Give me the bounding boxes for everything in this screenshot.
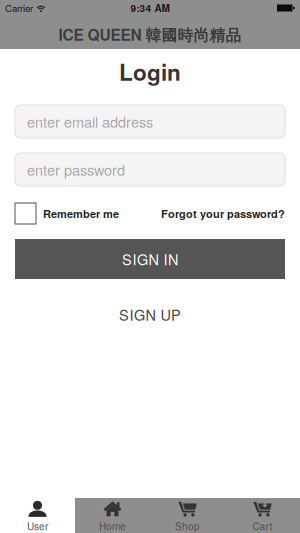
button[interactable]: SIGN UP [119, 304, 181, 325]
button[interactable]: SIGN IN [15, 239, 285, 279]
staticText: Remember me [43, 206, 119, 221]
staticText: enter email address [27, 111, 153, 132]
button[interactable]: Remember me [15, 203, 119, 224]
button[interactable]: enter email address [15, 105, 285, 138]
staticText: ICE QUEEN 韓國時尚精品 [58, 23, 241, 46]
button[interactable]: Home [75, 498, 150, 533]
button[interactable]: Shop [150, 498, 225, 533]
button[interactable]: Forgot your password? [161, 206, 285, 221]
button[interactable]: Cart [225, 498, 300, 533]
staticText: Home [99, 519, 126, 533]
staticText: Carrier [5, 1, 33, 15]
staticText: Shop [175, 519, 200, 533]
button[interactable]: enter password [15, 153, 285, 186]
staticText: Cart [252, 519, 272, 533]
staticText: enter password [27, 159, 125, 180]
staticText: User [27, 519, 48, 533]
staticText: SIGN UP [119, 304, 181, 325]
staticText: 9:34 AM [130, 1, 169, 15]
button[interactable]: User [0, 498, 75, 533]
staticText: Login [119, 55, 181, 88]
staticText: Forgot your password? [161, 206, 285, 221]
staticText: SIGN IN [122, 249, 178, 269]
